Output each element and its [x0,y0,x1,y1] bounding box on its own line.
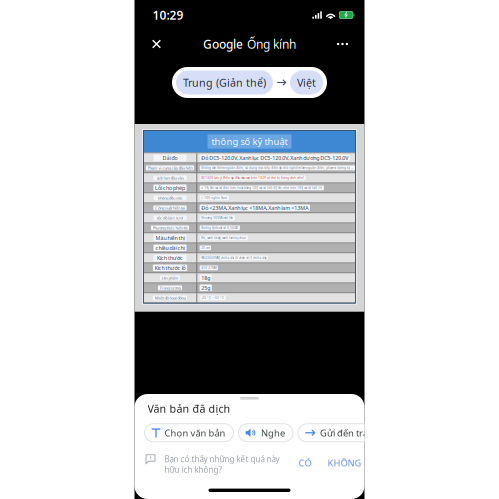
staticText: Công suất hiện tại [155,205,185,210]
staticText: 10:29 [152,7,183,23]
button[interactable]: Trung (Giản thể) [176,70,273,94]
staticText: Chọn văn bản [164,427,225,439]
button[interactable]: Chọn văn bản [144,424,233,442]
staticText: Kích thước [157,254,183,261]
staticText: Google [203,36,243,52]
staticText: CÓ [298,457,311,469]
staticText: Nhiệt độ hoạt động [154,295,185,300]
staticText: thông số kỹ thuật [211,135,287,148]
staticText: 45X 27MM [201,266,216,270]
staticText: Dải đo [162,154,177,161]
staticText: Trọng lượng [159,285,180,290]
staticText: 20 cm [201,246,209,250]
staticText: tốc độ làm tươi [157,215,183,220]
staticText: Việt [297,75,316,90]
button[interactable]: Swap languages [273,70,290,94]
button[interactable]: More options [328,33,356,55]
button[interactable]: KHÔNG [324,454,364,472]
staticText: Trung (Giản thể) [183,75,266,90]
staticText: Đỏ <23MA, Xanh lục <18MA, Xanh lam <13MA [201,204,308,211]
staticText: KHÔNG [327,457,361,469]
button[interactable]: Gửi đến trang [298,424,388,442]
staticText: W52XH20MM, chiều dài lỗ chân vít 3 chiều… [201,256,266,260]
staticText: > 100 nghìn Euro [201,196,227,200]
button[interactable]: Nghe [238,424,293,442]
staticText: chiều dài chì [155,244,184,251]
staticText: Phương thức hiển thị [152,225,187,230]
staticText: Gửi đến trang [320,427,380,439]
staticText: ± 1%, khi sai số đơn hơn hoặc bằng 10V, … [201,186,322,190]
staticText: giới hạn đầu vào [156,175,183,180]
staticText: Không cần thêm nguồn điện, sử dụng trực … [201,166,354,170]
staticText: Văn bản đã dịch [147,402,230,416]
staticText: 18g [201,274,210,281]
button[interactable]: Close [142,33,170,55]
staticText: Đỏ, xanh lá cây, xanh lam tùy chọn [201,236,246,240]
staticText: Đỏ DC5-120.0V, Xanh lục DC5-120.0V, Xanh… [201,154,348,161]
staticText: DC132V. Lưu ý: Điện áp đầu vào cao hơn 1… [201,176,304,180]
staticText: kháng đầu vào [158,195,182,200]
staticText: Nghe [261,427,285,439]
button[interactable]: CÓ [295,454,314,472]
staticText: Phạm vi cung cấp đầu hiện [147,165,192,170]
button[interactable]: Việt [290,70,323,94]
staticText: Bạn có thấy những kết quả này hữu ích kh… [164,454,279,475]
staticText: Lỗi cho phép [155,184,185,191]
staticText: Ống kính [244,36,296,52]
staticText: Khoảng 300MS một lần [201,216,233,220]
staticText: -20 ° C ~ 65 ° C [201,296,224,300]
staticText: Ba ống kỹ thuật số 0,56LED [201,226,238,230]
staticText: Màu hiển thị [155,234,184,241]
staticText: sản phẩm [161,275,178,280]
staticText: 25g [201,284,210,291]
staticText: Kích thước lỗ [154,264,185,271]
